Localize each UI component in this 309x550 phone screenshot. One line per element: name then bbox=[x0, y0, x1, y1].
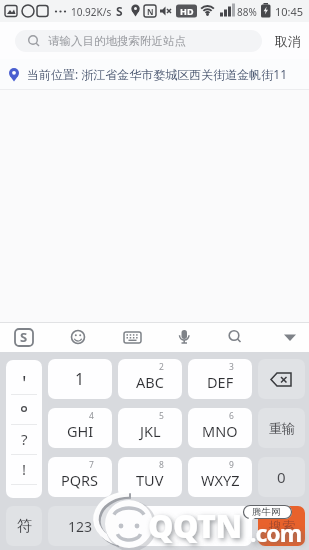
staticText: 0 bbox=[277, 467, 286, 487]
staticText: 4 bbox=[89, 410, 94, 422]
staticText: S bbox=[116, 3, 123, 19]
button[interactable] bbox=[64, 323, 92, 351]
button[interactable]: 7 bbox=[48, 457, 112, 497]
button[interactable]: 8 bbox=[118, 457, 182, 497]
button[interactable]: 当前位置: 浙江省金华市婺城区西关街道金帆街11 bbox=[0, 59, 309, 90]
button[interactable]: 1 bbox=[48, 359, 112, 399]
staticText: ABC bbox=[136, 372, 164, 392]
staticText: HD bbox=[180, 5, 194, 17]
button[interactable]: 3 bbox=[188, 359, 252, 399]
button[interactable]: 0 bbox=[258, 457, 305, 497]
button[interactable] bbox=[258, 359, 305, 399]
button[interactable]: 123 bbox=[48, 506, 112, 546]
button[interactable]: 2 bbox=[118, 359, 182, 399]
staticText: .com bbox=[250, 517, 302, 548]
button[interactable] bbox=[118, 323, 146, 351]
button[interactable]: 5 bbox=[118, 408, 182, 448]
staticText: 8 bbox=[159, 459, 164, 471]
staticText: 1 bbox=[75, 368, 85, 390]
staticText: WXYZ bbox=[201, 470, 240, 490]
staticText: 腾牛网 bbox=[252, 506, 281, 518]
staticText: 2 bbox=[159, 361, 164, 373]
staticText: TUV bbox=[136, 470, 164, 490]
staticText: 6 bbox=[229, 410, 234, 422]
staticText: 123 bbox=[68, 517, 93, 536]
staticText: N bbox=[147, 6, 154, 17]
button[interactable] bbox=[170, 323, 198, 351]
staticText: 搜索 bbox=[269, 518, 295, 534]
staticText: PQRS bbox=[61, 470, 99, 490]
staticText: GHI bbox=[67, 421, 94, 441]
staticText: 10.92K/s bbox=[71, 5, 112, 19]
staticText: 9 bbox=[229, 459, 234, 471]
staticText: 7 bbox=[89, 459, 94, 471]
button[interactable] bbox=[10, 323, 38, 351]
staticText: QQTN bbox=[148, 504, 242, 548]
button[interactable]: ' bbox=[6, 360, 42, 498]
button[interactable]: 搜索 bbox=[258, 506, 305, 546]
staticText: 重输 bbox=[269, 420, 295, 436]
staticText: 3 bbox=[229, 361, 234, 373]
staticText: 5 bbox=[159, 410, 164, 422]
staticText: JKL bbox=[140, 421, 161, 441]
staticText: S bbox=[20, 328, 28, 346]
button[interactable] bbox=[118, 506, 252, 546]
button[interactable] bbox=[276, 323, 304, 351]
staticText: MNO bbox=[202, 421, 238, 441]
button[interactable] bbox=[221, 323, 249, 351]
button[interactable]: 取消 bbox=[268, 24, 308, 57]
staticText: 10:45 bbox=[275, 4, 304, 19]
staticText: ? bbox=[21, 429, 28, 449]
staticText: 当前位置: 浙江省金华市婺城区西关街道金帆街11 bbox=[27, 66, 288, 82]
button[interactable]: 6 bbox=[188, 408, 252, 448]
button[interactable]: 4 bbox=[48, 408, 112, 448]
button[interactable]: 重输 bbox=[258, 408, 305, 448]
button[interactable]: 请输入目的地搜索附近站点 bbox=[15, 30, 262, 52]
staticText: 请输入目的地搜索附近站点 bbox=[48, 34, 186, 48]
staticText: 取消 bbox=[275, 33, 301, 49]
staticText: 符 bbox=[17, 517, 32, 536]
button[interactable]: 9 bbox=[188, 457, 252, 497]
staticText: ! bbox=[22, 459, 27, 479]
button[interactable]: 符 bbox=[6, 506, 42, 546]
staticText: DEF bbox=[207, 372, 234, 392]
staticText: ' bbox=[22, 369, 27, 396]
staticText: 88% bbox=[237, 5, 257, 19]
